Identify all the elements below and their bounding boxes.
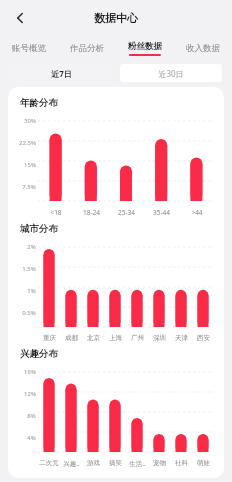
staticText: 粉丝数据 xyxy=(128,41,162,52)
staticText: 萌娃 xyxy=(197,459,210,467)
staticText: 社科 xyxy=(175,459,188,467)
staticText: 上海 xyxy=(109,334,122,342)
button[interactable]: 作品分析 xyxy=(58,36,116,60)
staticText: 西安 xyxy=(197,334,210,342)
staticText: 账号概览 xyxy=(12,43,46,54)
staticText: 1.5% xyxy=(22,265,36,273)
staticText: 二次元 xyxy=(39,459,59,467)
staticText: 7.5% xyxy=(22,183,36,191)
staticText: 4% xyxy=(27,434,36,442)
staticText: 16% xyxy=(24,368,36,376)
staticText: 近30日 xyxy=(158,68,184,79)
staticText: 作品分析 xyxy=(70,43,104,54)
button[interactable]: 近7日 xyxy=(10,64,112,82)
button[interactable]: 粉丝数据 xyxy=(116,36,174,60)
staticText: 2% xyxy=(27,243,36,251)
staticText: 近7日 xyxy=(51,68,72,79)
staticText: 重庆 xyxy=(43,334,56,342)
staticText: 8% xyxy=(27,412,36,420)
staticText: 年龄分布 xyxy=(20,97,58,109)
staticText: 兴趣分布 xyxy=(20,348,58,360)
staticText: 北京 xyxy=(87,334,100,342)
staticText: 宠物 xyxy=(153,459,166,467)
staticText: >44 xyxy=(191,208,203,217)
staticText: 18-24 xyxy=(83,208,100,217)
staticText: 数据中心 xyxy=(94,11,138,25)
button[interactable]: Back xyxy=(6,4,34,32)
staticText: 22.5% xyxy=(19,139,36,147)
staticText: 1% xyxy=(27,287,36,295)
staticText: 广州 xyxy=(131,334,144,342)
button[interactable]: 收入数据 xyxy=(174,36,232,60)
staticText: 35-44 xyxy=(153,208,170,217)
staticText: 12% xyxy=(24,390,36,398)
staticText: 0.5% xyxy=(22,309,36,317)
button[interactable]: 账号概览 xyxy=(0,36,58,60)
staticText: 25-34 xyxy=(118,208,135,217)
staticText: 15% xyxy=(24,161,36,169)
staticText: 搞笑 xyxy=(109,459,122,467)
staticText: 成都 xyxy=(65,334,78,342)
button[interactable]: 近30日 xyxy=(120,64,222,82)
staticText: 游戏 xyxy=(87,459,100,467)
staticText: 30% xyxy=(24,117,36,125)
staticText: 天津 xyxy=(175,334,188,342)
staticText: <18 xyxy=(50,208,62,217)
staticText: 收入数据 xyxy=(186,43,220,54)
staticText: 兴趣.. xyxy=(63,459,80,468)
staticText: 生活.. xyxy=(129,459,146,468)
staticText: 深圳 xyxy=(153,334,166,342)
staticText: 城市分布 xyxy=(20,223,58,235)
